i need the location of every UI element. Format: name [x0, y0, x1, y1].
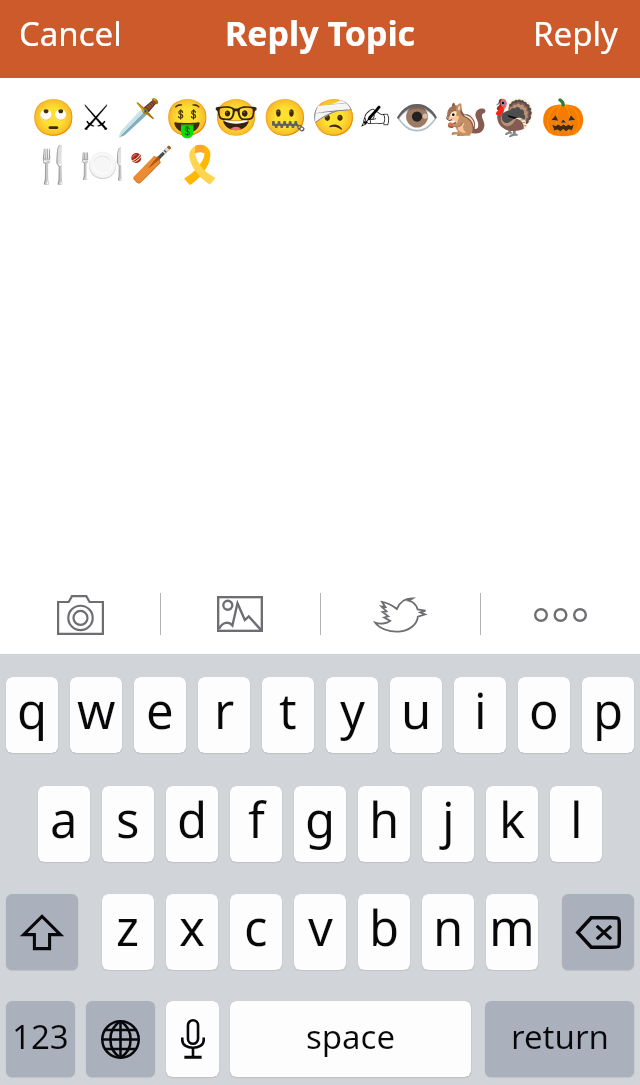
button[interactable]: m: [486, 894, 538, 970]
button[interactable]: x: [166, 894, 218, 970]
staticText: e: [146, 677, 174, 744]
staticText: j: [442, 786, 455, 853]
staticText: h: [369, 786, 400, 853]
staticText: Reply: [533, 11, 618, 56]
button[interactable]: z: [102, 894, 154, 970]
staticText: space: [306, 1014, 396, 1059]
staticText: g: [305, 786, 336, 853]
staticText: q: [17, 677, 48, 744]
button[interactable]: Backspace: [562, 894, 634, 970]
button[interactable]: Camera: [0, 578, 160, 654]
staticText: t: [279, 677, 297, 744]
button[interactable]: Reply: [519, 3, 640, 64]
button[interactable]: t: [262, 677, 314, 753]
staticText: f: [248, 786, 265, 853]
staticText: a: [50, 786, 78, 853]
button[interactable]: a: [38, 786, 90, 862]
button[interactable]: 123: [6, 1001, 75, 1077]
staticText: 123: [12, 1014, 69, 1059]
button[interactable]: e: [134, 677, 186, 753]
button[interactable]: Photo: [160, 578, 320, 654]
button[interactable]: f: [230, 786, 282, 862]
button[interactable]: p: [582, 677, 634, 753]
button[interactable]: u: [390, 677, 442, 753]
staticText: v: [308, 894, 333, 961]
button[interactable]: d: [166, 786, 218, 862]
staticText: y: [340, 677, 365, 744]
button[interactable]: i: [454, 677, 506, 753]
staticText: m: [489, 894, 535, 961]
staticText: u: [401, 677, 432, 744]
button[interactable]: k: [486, 786, 538, 862]
staticText: c: [244, 894, 268, 961]
button[interactable]: w: [70, 677, 122, 753]
button[interactable]: s: [102, 786, 154, 862]
button[interactable]: space: [230, 1001, 471, 1077]
button[interactable]: More options: [480, 578, 640, 654]
button[interactable]: v: [294, 894, 346, 970]
staticText: i: [474, 677, 487, 744]
button[interactable]: return: [485, 1001, 634, 1077]
button[interactable]: n: [422, 894, 474, 970]
button[interactable]: Dictate: [166, 1001, 219, 1077]
button[interactable]: o: [518, 677, 570, 753]
button[interactable]: Switch keyboard: [86, 1001, 155, 1077]
staticText: n: [433, 894, 464, 961]
staticText: z: [116, 894, 140, 961]
button[interactable]: q: [6, 677, 58, 753]
button[interactable]: h: [358, 786, 410, 862]
staticText: 🙄⚔️🗡️🤑🤓🤐🤕✍️👁️🐿️🦃🎃🍴🍽️🏏🎗️: [31, 97, 593, 186]
staticText: l: [570, 786, 583, 853]
button[interactable]: r: [198, 677, 250, 753]
staticText: Cancel: [19, 11, 122, 56]
staticText: p: [593, 677, 624, 744]
staticText: b: [369, 894, 400, 961]
staticText: w: [77, 677, 116, 744]
button[interactable]: Shift: [6, 894, 78, 970]
button[interactable]: c: [230, 894, 282, 970]
button[interactable]: y: [326, 677, 378, 753]
button[interactable]: g: [294, 786, 346, 862]
staticText: return: [511, 1014, 609, 1059]
button[interactable]: j: [422, 786, 474, 862]
staticText: Reply Topic: [225, 10, 416, 56]
staticText: d: [177, 786, 208, 853]
staticText: k: [499, 786, 526, 853]
button[interactable]: Cancel: [0, 3, 136, 64]
button[interactable]: l: [550, 786, 602, 862]
staticText: r: [214, 677, 235, 744]
button[interactable]: Tweet: [320, 578, 480, 654]
staticText: o: [529, 677, 559, 744]
staticText: x: [179, 894, 205, 961]
staticText: s: [116, 786, 140, 853]
button[interactable]: b: [358, 894, 410, 970]
